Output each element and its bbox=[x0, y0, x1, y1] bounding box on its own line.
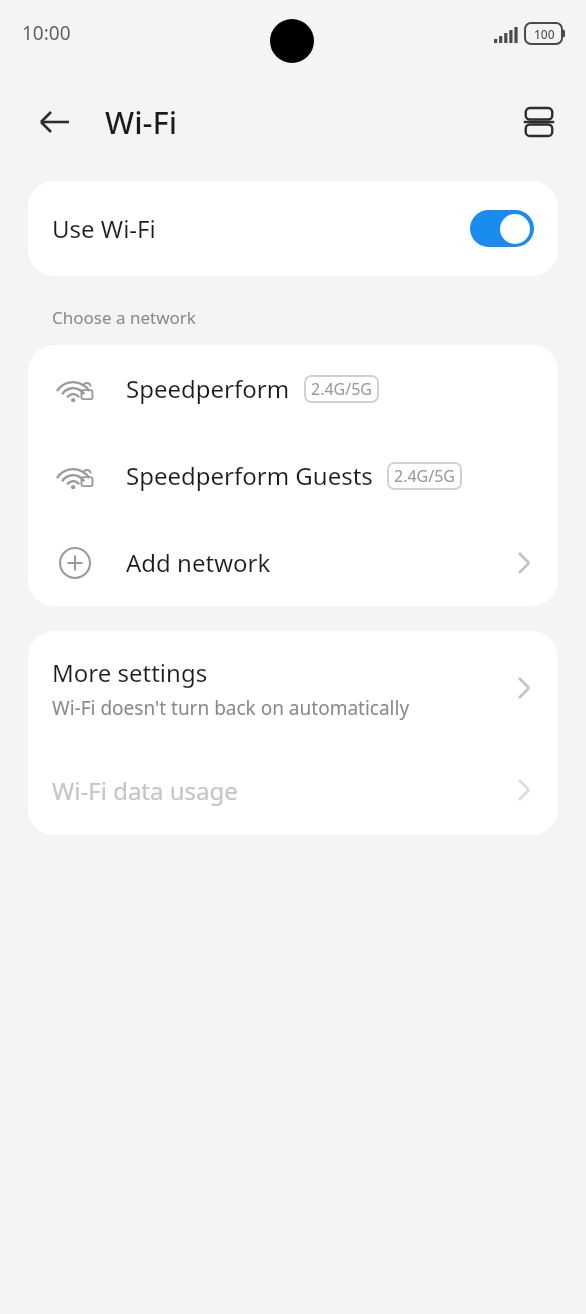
staticText: Add network bbox=[126, 546, 271, 579]
staticText: 2.4G/5G bbox=[311, 378, 372, 400]
button[interactable]: Back bbox=[30, 97, 80, 147]
staticText: 10:00 bbox=[22, 20, 71, 46]
staticText: More settings bbox=[52, 656, 208, 689]
staticText: Wi-Fi data usage bbox=[52, 774, 514, 807]
button[interactable]: Wi-Fi data usage bbox=[28, 745, 558, 835]
button[interactable]: Use Wi-Fi bbox=[28, 181, 558, 276]
button[interactable]: Speedperform bbox=[28, 345, 558, 432]
staticText: Speedperform bbox=[126, 372, 290, 405]
staticText: Wi-Fi bbox=[105, 101, 178, 143]
staticText: Use Wi-Fi bbox=[52, 212, 156, 245]
staticText: Choose a network bbox=[52, 306, 196, 329]
staticText: Speedperform Guests bbox=[126, 459, 373, 492]
staticText: 2.4G/5G bbox=[394, 465, 455, 487]
button[interactable]: More settings bbox=[28, 631, 558, 745]
button[interactable]: Split screen bbox=[514, 97, 564, 147]
button[interactable]: Speedperform Guests bbox=[28, 432, 558, 519]
button[interactable]: Add network bbox=[28, 519, 558, 606]
staticText: 100 bbox=[534, 26, 555, 42]
staticText: Wi-Fi doesn't turn back on automatically bbox=[52, 695, 410, 721]
